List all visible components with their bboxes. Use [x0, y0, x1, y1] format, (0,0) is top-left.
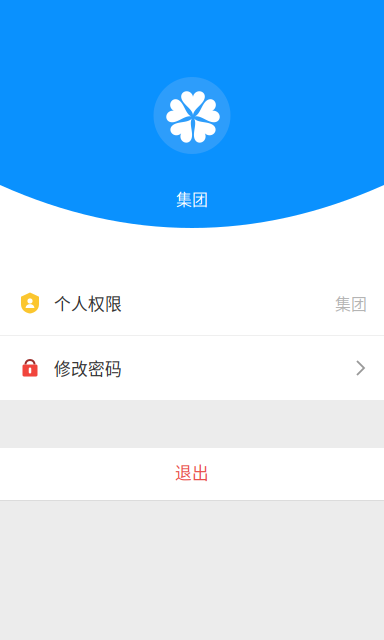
- button[interactable]: 个人权限: [0, 271, 384, 335]
- staticText: 集团: [335, 291, 367, 314]
- staticText: 退出: [175, 460, 209, 484]
- staticText: 修改密码: [54, 356, 122, 380]
- staticText: 个人权限: [54, 291, 122, 315]
- button[interactable]: 退出: [0, 448, 384, 500]
- button[interactable]: 修改密码: [0, 336, 384, 400]
- staticText: 集团: [176, 187, 208, 210]
